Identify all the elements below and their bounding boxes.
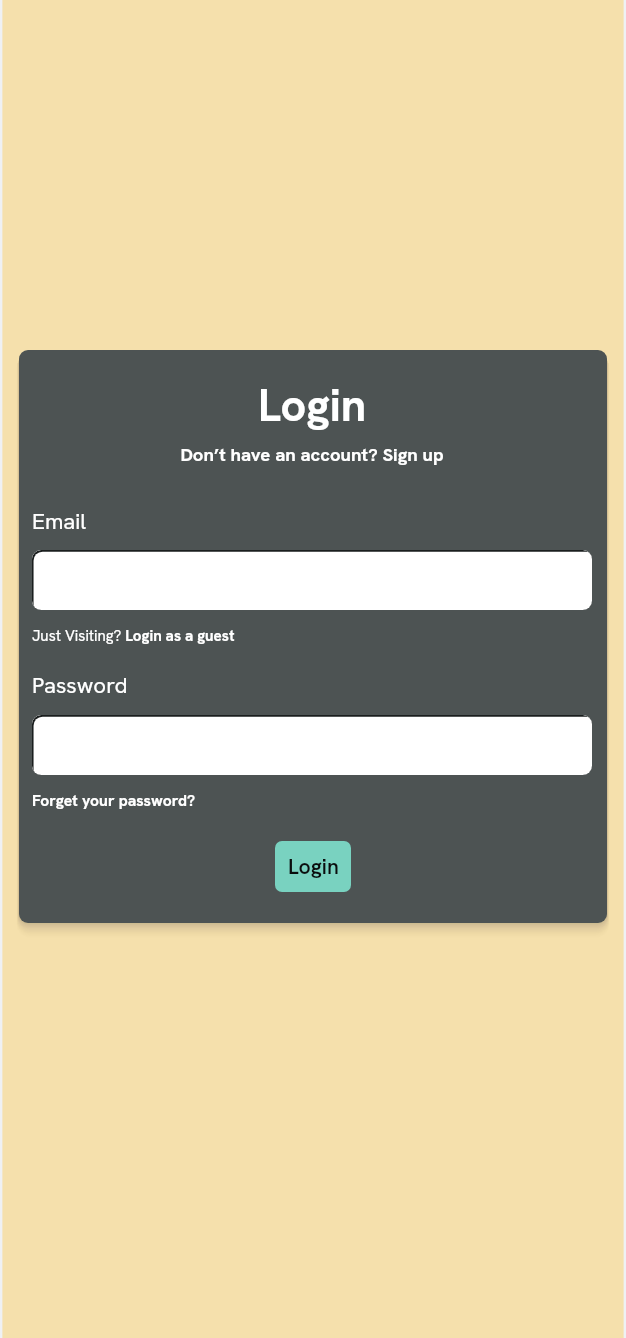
button[interactable]: Don’t have an account? Sign up	[19, 442, 606, 466]
button[interactable]	[32, 550, 592, 610]
staticText: Password	[32, 671, 128, 700]
button[interactable]	[32, 715, 592, 775]
staticText: Don’t have an account? Sign up	[19, 442, 606, 466]
staticText: Forget your password?	[32, 790, 196, 810]
staticText: Just Visiting? Login as a guest	[32, 626, 235, 646]
button[interactable]: Forget your password?	[32, 790, 196, 810]
button[interactable]: Just Visiting? Login as a guest	[32, 626, 235, 646]
staticText: Login	[19, 376, 606, 435]
staticText: Login	[288, 853, 339, 881]
button[interactable]: Login	[275, 841, 351, 892]
staticText: Email	[32, 507, 87, 536]
